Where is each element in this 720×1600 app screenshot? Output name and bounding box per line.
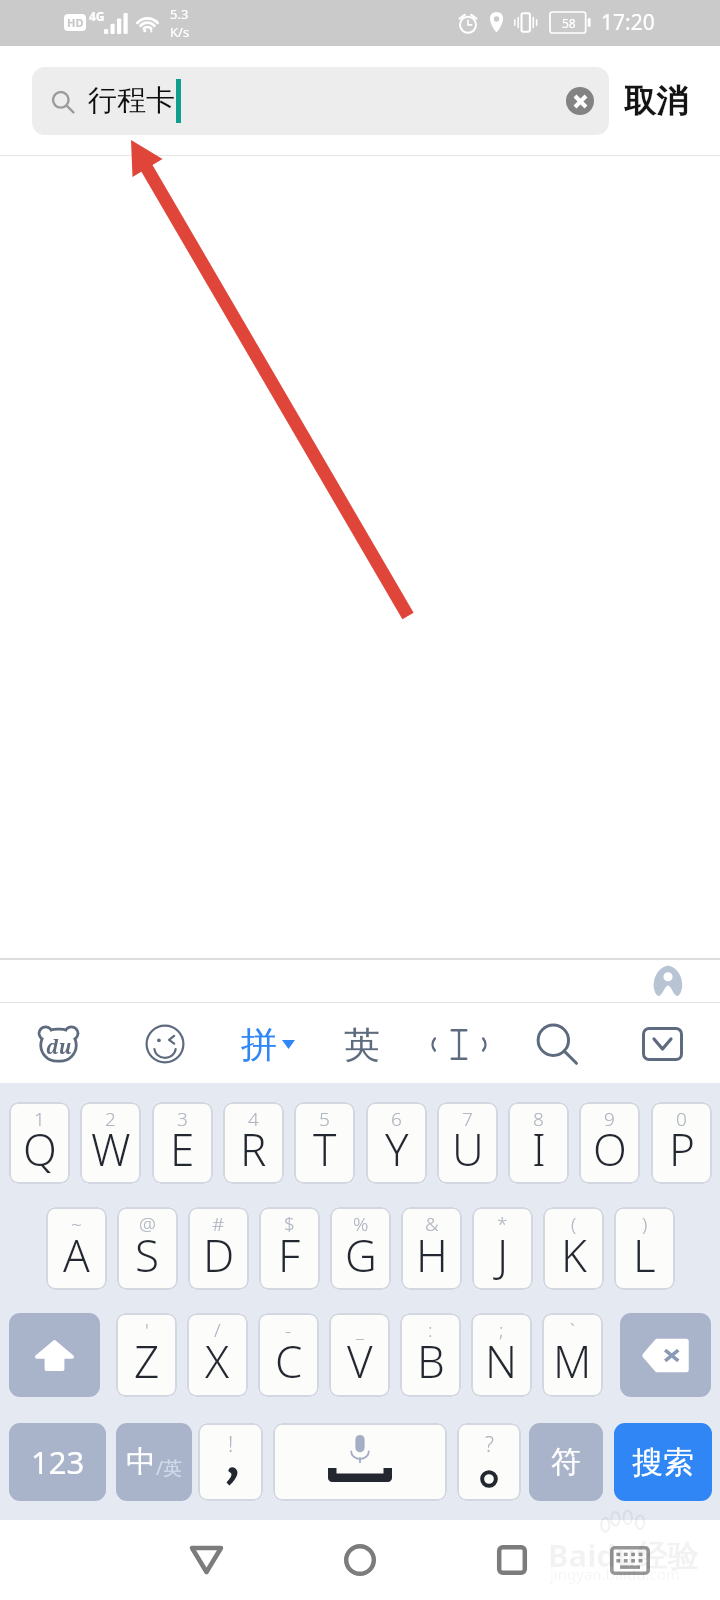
button[interactable]: 英 — [328, 1010, 396, 1078]
staticText: ; — [499, 1317, 504, 1343]
staticText: M — [553, 1331, 592, 1391]
staticText: 123 — [31, 1441, 85, 1483]
staticText: A — [63, 1225, 90, 1285]
button[interactable]: 2 — [80, 1102, 141, 1184]
button[interactable]: 中 — [116, 1423, 192, 1501]
button[interactable]: Hide keyboard — [628, 1010, 696, 1078]
button[interactable]: Baidu input settings — [24, 1010, 92, 1078]
staticText: 9 — [604, 1106, 615, 1132]
button[interactable]: Move cursor — [425, 1010, 493, 1078]
button[interactable]: Hide keyboard — [600, 1532, 660, 1588]
staticText: ) — [642, 1211, 648, 1237]
button[interactable]: 8 — [508, 1102, 569, 1184]
staticText: U — [452, 1119, 484, 1179]
button[interactable]: ; — [471, 1313, 532, 1397]
button[interactable]: ) — [614, 1207, 675, 1290]
button[interactable]: % — [330, 1207, 391, 1290]
button[interactable]: Back — [176, 1530, 236, 1590]
staticText: P — [669, 1119, 695, 1179]
button[interactable]: Full stop — [457, 1423, 521, 1501]
staticText: R — [240, 1119, 267, 1179]
button[interactable]: 5 — [294, 1102, 355, 1184]
staticText: I — [532, 1119, 546, 1179]
staticText: 58 — [562, 15, 576, 31]
button[interactable]: 拼 — [230, 1010, 306, 1078]
staticText: 3 — [177, 1106, 188, 1132]
button[interactable]: 符 — [529, 1423, 603, 1501]
button[interactable]: ( — [543, 1207, 604, 1290]
button[interactable]: 3 — [152, 1102, 213, 1184]
staticText: jingyan.baidu.com — [550, 1564, 680, 1584]
staticText: & — [425, 1211, 439, 1237]
staticText: ' — [145, 1317, 149, 1343]
staticText: 取消 — [624, 81, 688, 121]
button[interactable]: Emoji — [131, 1010, 199, 1078]
staticText: 英 — [344, 1022, 380, 1067]
staticText: W — [91, 1119, 131, 1179]
staticText: Q — [23, 1119, 57, 1179]
staticText: ( — [571, 1211, 577, 1237]
button[interactable]: ' — [116, 1313, 177, 1397]
button[interactable]: 7 — [437, 1102, 498, 1184]
staticText: X — [205, 1331, 230, 1391]
button[interactable]: 9 — [579, 1102, 640, 1184]
button[interactable]: ~ — [46, 1207, 107, 1290]
staticText: 5 — [319, 1106, 330, 1132]
staticText: du — [46, 1034, 72, 1060]
staticText: 搜索 — [632, 1443, 694, 1482]
button[interactable]: 6 — [366, 1102, 427, 1184]
staticText: 8 — [533, 1106, 544, 1132]
button[interactable]: : — [400, 1313, 461, 1397]
button[interactable]: Input method logo — [651, 965, 685, 996]
staticText: E — [170, 1119, 195, 1179]
button[interactable]: & — [401, 1207, 462, 1290]
button[interactable]: / — [187, 1313, 248, 1397]
button[interactable]: Home — [330, 1530, 390, 1590]
staticText: HD — [67, 15, 84, 30]
staticText: ~ — [71, 1211, 82, 1237]
staticText: H — [416, 1225, 448, 1285]
button[interactable]: 搜索 — [614, 1423, 712, 1501]
button[interactable]: Search — [522, 1010, 590, 1078]
button[interactable]: $ — [259, 1207, 320, 1290]
button[interactable]: 0 — [651, 1102, 712, 1184]
button[interactable]: 1 — [9, 1102, 70, 1184]
button[interactable]: ` — [542, 1313, 603, 1397]
staticText: ! — [228, 1430, 234, 1459]
staticText: 符 — [551, 1443, 581, 1481]
button[interactable]: Comma — [198, 1423, 263, 1501]
staticText: L — [633, 1225, 656, 1285]
staticText: 行程卡 — [88, 82, 175, 119]
button[interactable]: @ — [117, 1207, 178, 1290]
button[interactable]: 行程卡 — [32, 67, 609, 135]
button[interactable]: 4 — [223, 1102, 284, 1184]
staticText: 4 — [248, 1106, 259, 1132]
staticText: ` — [570, 1317, 576, 1343]
staticText: /英 — [156, 1455, 183, 1481]
staticText: - — [285, 1317, 292, 1343]
staticText: 5.3 — [170, 5, 189, 23]
button[interactable]: * — [472, 1207, 533, 1290]
button[interactable]: - — [258, 1313, 319, 1397]
staticText: _ — [356, 1317, 364, 1343]
staticText: 4G — [89, 8, 105, 24]
button[interactable]: 123 — [9, 1423, 106, 1501]
staticText: ? — [485, 1430, 494, 1459]
staticText: C — [275, 1331, 303, 1391]
staticText: @ — [139, 1211, 156, 1237]
button[interactable]: Shift — [9, 1313, 100, 1397]
staticText: N — [485, 1331, 518, 1391]
button[interactable]: Space — [273, 1423, 447, 1501]
staticText: 6 — [391, 1106, 402, 1132]
staticText: J — [497, 1225, 509, 1285]
staticText: Baidu经验 — [548, 1534, 699, 1576]
staticText: / — [214, 1317, 221, 1343]
button[interactable]: Recent apps — [482, 1530, 542, 1590]
button[interactable]: Backspace — [620, 1313, 711, 1397]
button[interactable]: _ — [329, 1313, 390, 1397]
staticText: % — [353, 1211, 369, 1237]
staticText: 7 — [462, 1106, 473, 1132]
button[interactable]: 取消 — [620, 67, 692, 135]
button[interactable]: # — [188, 1207, 249, 1290]
button[interactable]: Clear text — [566, 87, 594, 115]
